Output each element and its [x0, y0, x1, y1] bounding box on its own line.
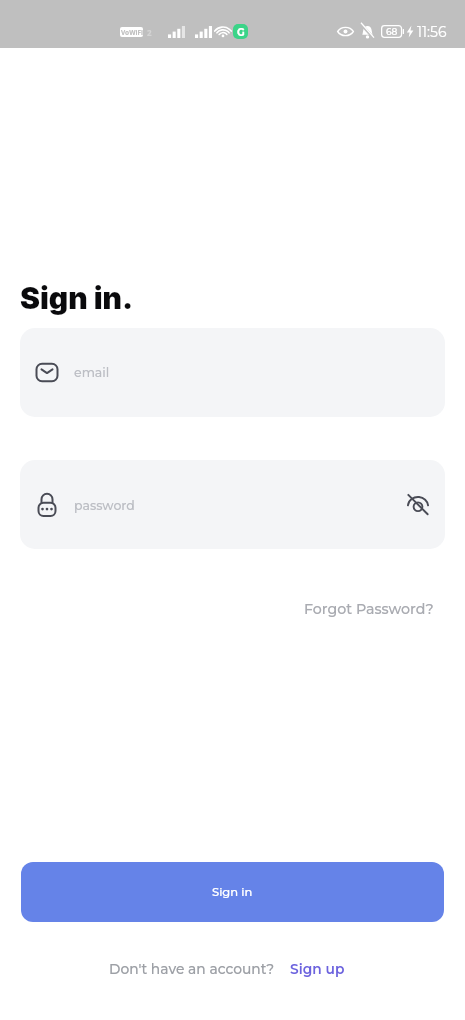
- staticText: email: [74, 365, 110, 380]
- button[interactable]: Sign up: [275, 961, 349, 978]
- button[interactable]: email: [20, 328, 445, 417]
- staticText: 68: [386, 26, 398, 37]
- button[interactable]: Forgot Password?: [288, 592, 450, 625]
- staticText: VoWiFi: [121, 28, 143, 37]
- staticText: 11:56: [417, 23, 447, 40]
- staticText: 2: [147, 27, 152, 37]
- staticText: Sign in: [212, 885, 253, 899]
- staticText: G: [237, 26, 245, 38]
- button[interactable]: Show password: [396, 483, 440, 527]
- staticText: Don't have an account?: [109, 961, 275, 978]
- staticText: Sign in.: [20, 280, 134, 316]
- button[interactable]: Sign in: [21, 862, 444, 922]
- staticText: Sign up: [290, 961, 345, 978]
- button[interactable]: password: [20, 460, 445, 549]
- staticText: password: [74, 498, 135, 513]
- staticText: Forgot Password?: [304, 600, 434, 617]
